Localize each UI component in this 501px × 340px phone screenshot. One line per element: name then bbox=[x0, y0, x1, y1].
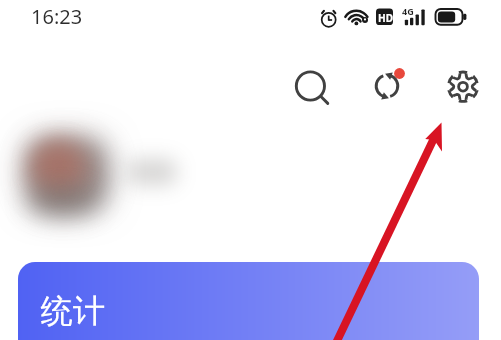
staticText: 16:23 bbox=[31, 3, 83, 30]
button[interactable]: Sync bbox=[365, 62, 411, 108]
staticText: 统计 bbox=[41, 291, 105, 331]
button[interactable]: Settings bbox=[441, 65, 485, 109]
button[interactable]: Search bbox=[288, 64, 333, 109]
staticText: 4G bbox=[402, 5, 414, 17]
button[interactable]: 统计 bbox=[18, 262, 479, 340]
staticText: HD bbox=[378, 11, 393, 25]
